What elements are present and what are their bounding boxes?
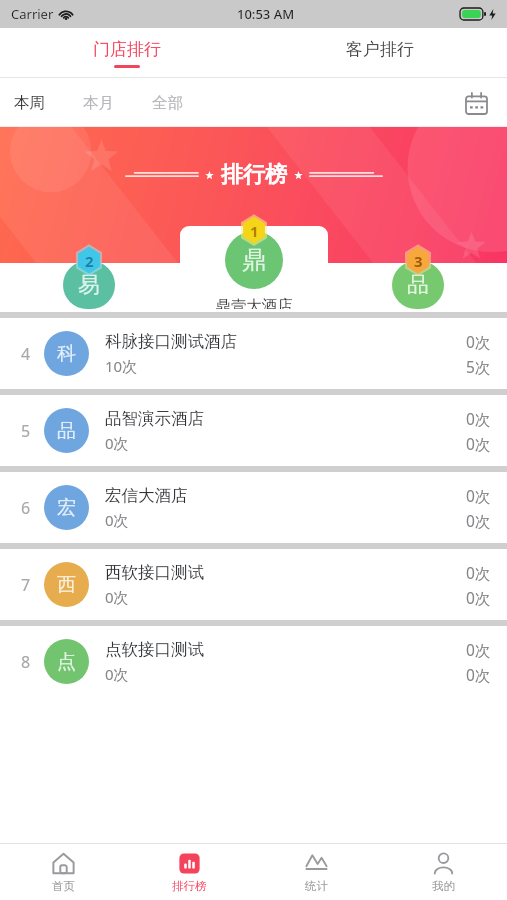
staticText: 0次 — [466, 664, 491, 685]
staticText: 点 — [57, 650, 76, 674]
staticText: 10次 — [105, 356, 138, 376]
staticText: 本周 — [14, 93, 45, 113]
button[interactable]: 统计 — [253, 844, 380, 900]
staticText: 0次 — [105, 587, 129, 607]
staticText: 0次 — [466, 331, 491, 352]
staticText: 宏信大酒店 — [105, 485, 188, 506]
button[interactable]: 首页 — [0, 844, 126, 900]
button[interactable]: 品 — [343, 245, 493, 309]
button[interactable]: 鼎 — [159, 215, 349, 309]
button[interactable]: 本周 — [14, 87, 45, 119]
staticText: 0次 — [105, 433, 129, 453]
staticText: 统计 — [305, 879, 328, 893]
staticText: 科 — [57, 342, 76, 366]
staticText: 科脉接口测试酒店 — [105, 331, 237, 352]
staticText: 点软接口测试 — [105, 639, 204, 660]
button[interactable]: 全部 — [152, 87, 183, 119]
staticText: 品 — [407, 271, 429, 299]
button[interactable]: 7 — [0, 549, 507, 620]
staticText: 门店排行 — [93, 39, 161, 60]
staticText: 0次 — [466, 510, 491, 531]
button[interactable]: 6 — [0, 472, 507, 543]
staticText: 0次 — [466, 433, 491, 454]
button[interactable]: 4 — [0, 318, 507, 389]
staticText: 0次 — [105, 510, 129, 530]
staticText: 我的 — [432, 879, 455, 893]
staticText: 3 — [414, 251, 423, 271]
staticText: 宏 — [57, 496, 76, 520]
staticText: 5次 — [466, 356, 491, 377]
staticText: 本月 — [83, 93, 114, 113]
staticText: 西 — [57, 573, 76, 597]
button[interactable]: 排行榜 — [126, 844, 253, 900]
staticText: 4 — [21, 343, 31, 365]
staticText: 0次 — [466, 562, 491, 583]
button[interactable]: 8 — [0, 626, 507, 697]
staticText: 0次 — [466, 408, 491, 429]
staticText: 0次 — [466, 485, 491, 506]
staticText: 5 — [21, 420, 31, 442]
staticText: 排行榜 — [172, 879, 207, 893]
staticText: 排行榜 — [221, 161, 287, 189]
staticText: 1 — [250, 221, 259, 241]
staticText: 8 — [21, 651, 31, 673]
button[interactable]: 选择日期 — [459, 86, 493, 120]
staticText: 鼎壹大酒店 — [215, 296, 293, 309]
staticText: 品智演示酒店 — [105, 408, 204, 429]
staticText: 西软接口测试 — [105, 562, 204, 583]
staticText: 0次 — [466, 639, 491, 660]
staticText: 全部 — [152, 93, 183, 113]
staticText: 0次 — [105, 664, 129, 684]
staticText: 6 — [21, 497, 31, 519]
button[interactable]: 客户排行 — [253, 28, 507, 78]
button[interactable]: 门店排行 — [0, 28, 253, 78]
staticText: 0次 — [466, 587, 491, 608]
staticText: 鼎 — [242, 245, 267, 276]
staticText: 品 — [57, 419, 76, 443]
button[interactable]: 本月 — [83, 87, 114, 119]
staticText: 客户排行 — [346, 39, 414, 60]
button[interactable]: 易 — [14, 245, 164, 309]
staticText: 易 — [78, 271, 100, 299]
staticText: 10:53 AM — [237, 5, 295, 23]
staticText: 首页 — [52, 879, 75, 893]
button[interactable]: 我的 — [380, 844, 507, 900]
staticText: 2 — [85, 251, 94, 271]
button[interactable]: 5 — [0, 395, 507, 466]
staticText: 7 — [21, 574, 31, 596]
staticText: Carrier — [11, 5, 54, 23]
